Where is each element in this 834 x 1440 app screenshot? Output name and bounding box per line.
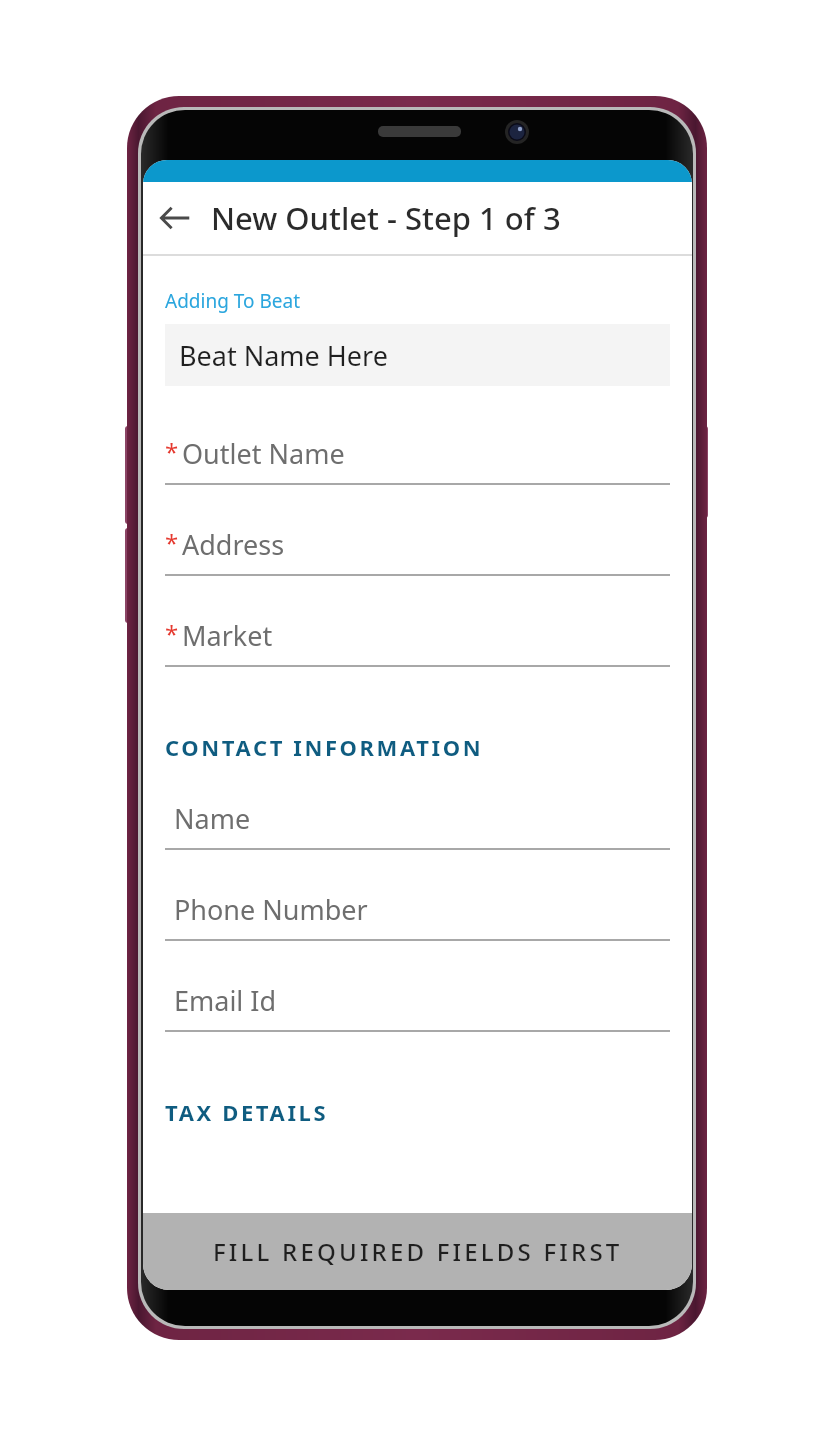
button[interactable]: * (165, 526, 670, 576)
button[interactable]: Back (152, 195, 198, 241)
button[interactable]: Phone Number (165, 891, 670, 941)
staticText: CONTACT INFORMATION (165, 732, 484, 762)
button[interactable]: FILL REQUIRED FIELDS FIRST (143, 1213, 692, 1290)
staticText: * (165, 435, 179, 468)
staticText: New Outlet - Step 1 of 3 (211, 197, 561, 239)
button[interactable]: * (165, 435, 670, 485)
staticText: Name (174, 800, 251, 837)
staticText: Market (182, 617, 273, 654)
staticText: Adding To Beat (165, 288, 301, 314)
staticText: Address (182, 526, 285, 563)
staticText: Phone Number (174, 891, 368, 928)
staticText: Email Id (174, 982, 277, 1019)
button[interactable]: Email Id (165, 982, 670, 1032)
staticText: TAX DETAILS (165, 1097, 329, 1127)
staticText: * (165, 526, 179, 559)
staticText: Beat Name Here (179, 337, 388, 374)
staticText: * (165, 617, 179, 650)
button[interactable]: Beat Name Here (165, 324, 670, 386)
button[interactable]: * (165, 617, 670, 667)
staticText: Outlet Name (182, 435, 345, 472)
button[interactable]: Name (165, 800, 670, 850)
staticText: FILL REQUIRED FIELDS FIRST (213, 1235, 623, 1268)
